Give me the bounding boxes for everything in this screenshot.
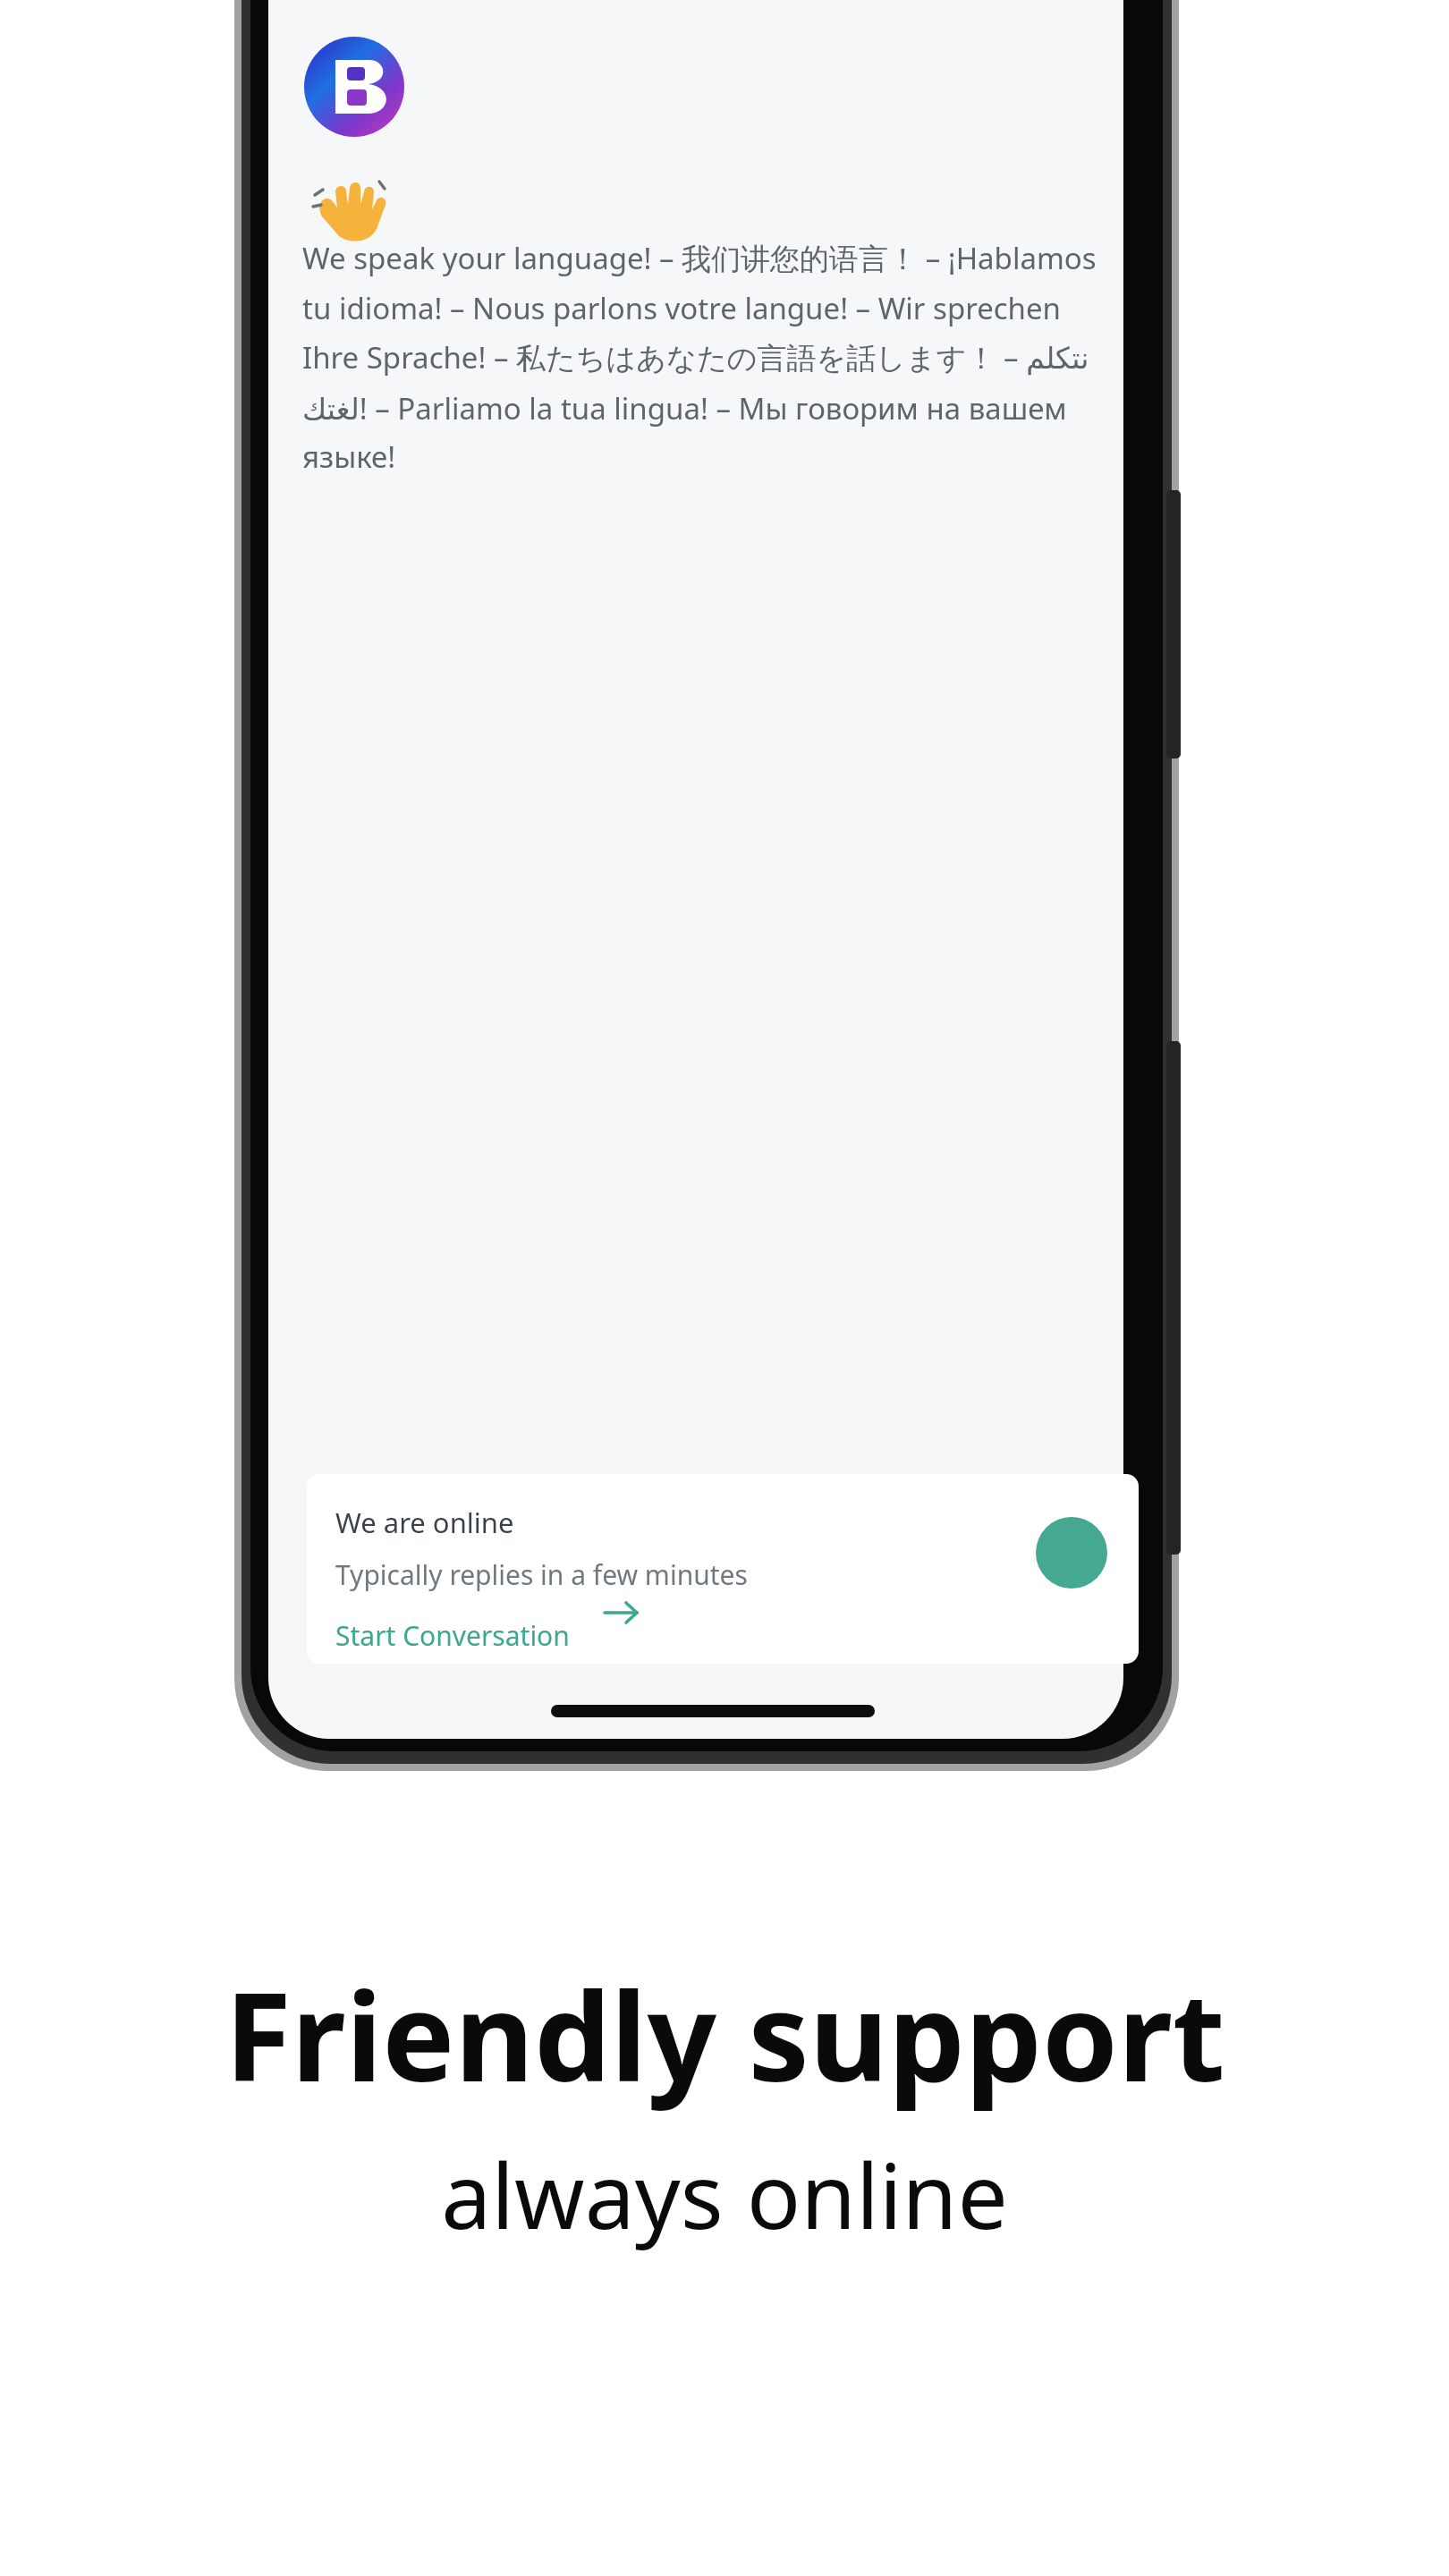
staticText: Typically replies in a few minutes [335,1556,748,1593]
staticText: We are online [335,1504,514,1541]
staticText: always online [441,2133,1008,2255]
staticText: Start Conversation [335,1617,570,1654]
button[interactable]: We are online [307,1474,1139,1664]
staticText: We speak your language! – 我们讲您的语言！ – ¡Ha… [302,238,1104,477]
staticText: Friendly support [225,1952,1225,2117]
